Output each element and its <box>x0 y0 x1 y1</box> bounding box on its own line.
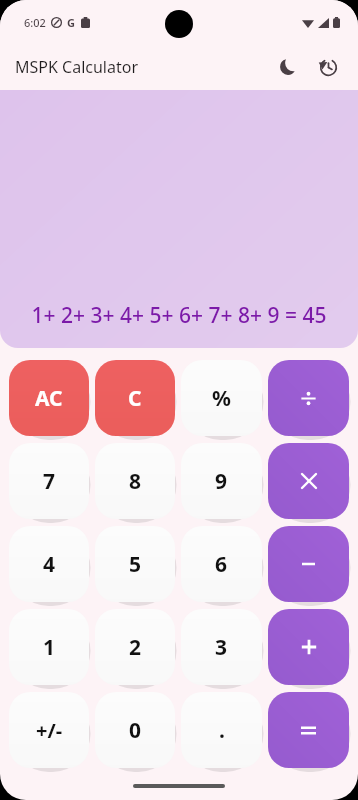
button[interactable]: % <box>181 360 262 436</box>
staticText: 9 <box>215 467 228 496</box>
button[interactable]: +/- <box>9 692 89 768</box>
button[interactable]: C <box>95 360 175 436</box>
staticText: % <box>212 384 231 413</box>
button[interactable]: 0 <box>95 692 175 768</box>
button[interactable]: Dark mode <box>268 47 308 87</box>
button[interactable]: AC <box>9 360 89 436</box>
staticText: 1+ 2+ 3+ 4+ 5+ 6+ 7+ 8+ 9 = 45 <box>0 301 358 330</box>
button[interactable]: 5 <box>95 526 175 602</box>
staticText: MSPK Calculator <box>15 56 138 78</box>
button[interactable]: 1 <box>9 609 89 685</box>
button[interactable]: History <box>308 47 348 87</box>
staticText: 8 <box>129 467 142 496</box>
staticText: 1 <box>43 633 56 662</box>
staticText: . <box>219 716 225 745</box>
staticText: G <box>67 15 75 30</box>
staticText: 6 <box>215 550 228 579</box>
staticText: 2 <box>129 633 142 662</box>
button[interactable]: . <box>181 692 262 768</box>
button[interactable]: 6 <box>181 526 262 602</box>
staticText: 5 <box>129 550 142 579</box>
button[interactable]: 2 <box>95 609 175 685</box>
button[interactable] <box>268 360 349 436</box>
staticText: C <box>128 384 142 413</box>
staticText: 4 <box>43 550 56 579</box>
staticText: AC <box>35 384 63 413</box>
staticText: +/- <box>36 717 63 744</box>
staticText: 0 <box>129 716 142 745</box>
staticText: 7 <box>43 467 56 496</box>
button[interactable]: 7 <box>9 443 89 519</box>
button[interactable] <box>268 443 349 519</box>
button[interactable] <box>268 526 349 602</box>
button[interactable] <box>268 692 349 768</box>
button[interactable]: 8 <box>95 443 175 519</box>
button[interactable]: 9 <box>181 443 262 519</box>
button[interactable]: 3 <box>181 609 262 685</box>
staticText: 6:02 <box>24 15 46 30</box>
button[interactable] <box>268 609 349 685</box>
staticText: 3 <box>215 633 228 662</box>
button[interactable]: 4 <box>9 526 89 602</box>
